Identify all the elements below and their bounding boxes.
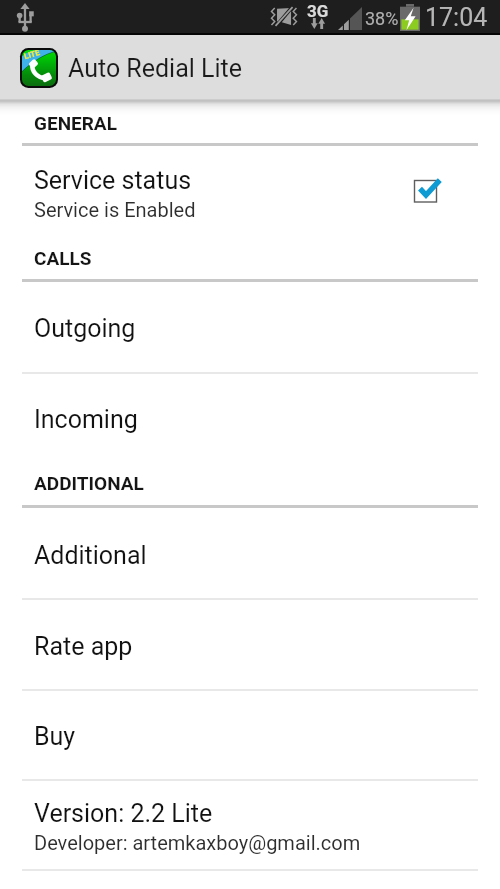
staticText: Service is Enabled — [34, 198, 196, 221]
staticText: Version: 2.2 Lite — [34, 799, 213, 828]
staticText: Buy — [34, 722, 76, 751]
staticText: Auto Redial Lite — [68, 54, 243, 83]
staticText: GENERAL — [34, 112, 117, 134]
staticText: Additional — [34, 541, 147, 570]
button[interactable]: Outgoing — [0, 314, 500, 343]
staticText: 38% — [365, 8, 399, 29]
button[interactable]: Incoming — [0, 405, 500, 434]
other: USB connected — [17, 3, 34, 32]
staticText: ADDITIONAL — [34, 472, 144, 494]
staticText: Incoming — [34, 405, 138, 434]
staticText: Developer: artemkaxboy@gmail.com — [34, 831, 361, 854]
other: Vibrate mode — [270, 8, 297, 25]
staticText: Outgoing — [34, 314, 136, 343]
staticText: 17:04 — [425, 3, 488, 32]
button[interactable]: Version: 2.2 Lite — [0, 799, 500, 828]
staticText: CALLS — [34, 247, 92, 269]
other: Signal strength — [338, 7, 362, 30]
staticText: Rate app — [34, 632, 133, 661]
button[interactable]: Buy — [0, 722, 500, 751]
other: 3G data — [307, 3, 328, 29]
button[interactable]: Additional — [0, 541, 500, 570]
button[interactable]: Rate app — [0, 632, 500, 661]
button[interactable]: Service status — [0, 166, 500, 195]
staticText: 3G — [307, 1, 329, 21]
button[interactable]: Service status checkbox — [410, 176, 450, 216]
staticText: LITE — [23, 50, 42, 61]
staticText: Service status — [34, 166, 192, 195]
